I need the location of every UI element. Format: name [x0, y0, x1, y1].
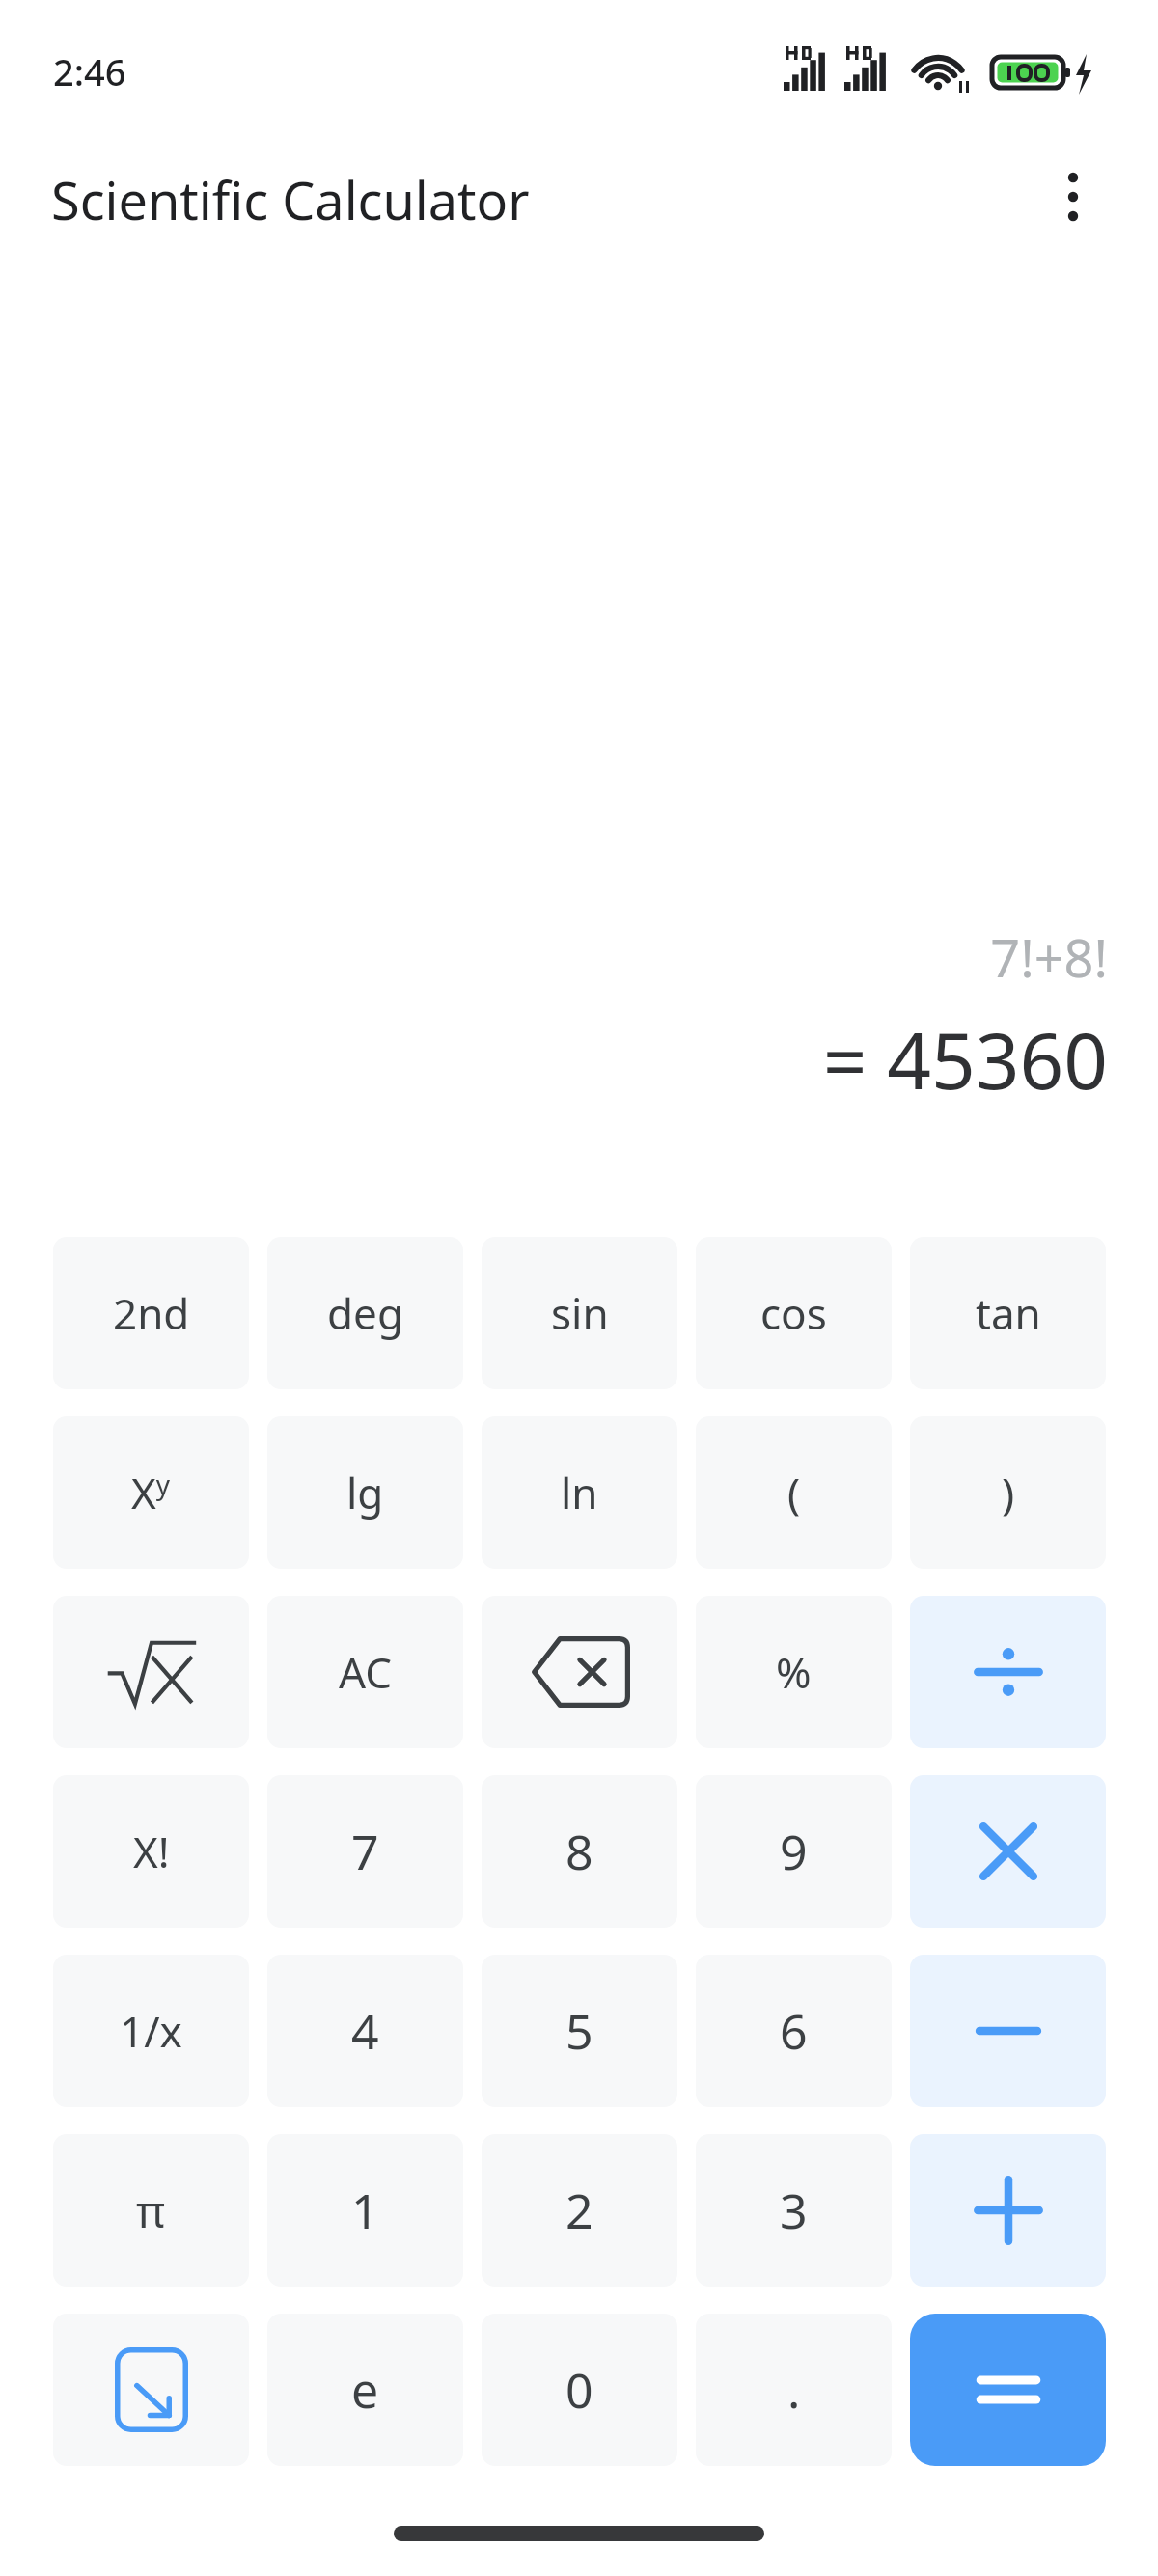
staticText: %	[776, 1643, 812, 1701]
staticText: AC	[339, 1643, 393, 1701]
button[interactable]: (	[696, 1416, 892, 1569]
button[interactable]: π	[53, 2134, 249, 2287]
staticText: 2:46	[53, 46, 126, 96]
button[interactable]: 2	[482, 2134, 677, 2287]
staticText: ln	[561, 1464, 598, 1521]
staticText: 1	[351, 2178, 379, 2243]
button[interactable]: ln	[482, 1416, 677, 1569]
button[interactable]: 6	[696, 1955, 892, 2107]
button[interactable]: 3	[696, 2134, 892, 2287]
button[interactable]: 1	[267, 2134, 463, 2287]
button[interactable]: 5	[482, 1955, 677, 2107]
staticText: deg	[327, 1284, 403, 1342]
staticText: sin	[551, 1284, 609, 1342]
button[interactable]: deg	[267, 1237, 463, 1389]
button[interactable]: 4	[267, 1955, 463, 2107]
staticText: 7!+8!	[0, 921, 1108, 993]
button[interactable]: More options	[1031, 154, 1116, 239]
button[interactable]: 9	[696, 1775, 892, 1928]
button[interactable]: 1/x	[53, 1955, 249, 2107]
button[interactable]: )	[910, 1416, 1106, 1569]
button[interactable]: AC	[267, 1596, 463, 1748]
button[interactable]: sin	[482, 1237, 677, 1389]
staticText: 2nd	[113, 1284, 190, 1342]
staticText: Xy	[131, 1464, 171, 1521]
staticText: π	[136, 2180, 166, 2241]
button[interactable]: tan	[910, 1237, 1106, 1389]
staticText: 6	[780, 1998, 808, 2064]
staticText: e	[351, 2357, 379, 2423]
button[interactable]: 7	[267, 1775, 463, 1928]
button[interactable]: Backspace	[482, 1596, 677, 1748]
button[interactable]: Plus	[910, 2134, 1106, 2287]
button[interactable]: Xy	[53, 1416, 249, 1569]
button[interactable]: .	[696, 2314, 892, 2466]
button[interactable]: cos	[696, 1237, 892, 1389]
staticText: 2	[565, 2178, 593, 2243]
button[interactable]: 0	[482, 2314, 677, 2466]
staticText: Scientific Calculator	[51, 164, 530, 235]
staticText: tan	[976, 1284, 1041, 1342]
staticText: )	[1002, 1464, 1015, 1521]
staticText: 7	[351, 1819, 379, 1884]
button[interactable]: 8	[482, 1775, 677, 1928]
button[interactable]: Minus	[910, 1955, 1106, 2107]
button[interactable]: X!	[53, 1775, 249, 1928]
staticText: cos	[760, 1284, 827, 1342]
staticText: = 45360	[0, 1006, 1108, 1111]
button[interactable]: Square root	[53, 1596, 249, 1748]
staticText: 4	[351, 1998, 379, 2064]
button[interactable]: lg	[267, 1416, 463, 1569]
button[interactable]: Equals	[910, 2314, 1106, 2466]
button[interactable]: 2nd	[53, 1237, 249, 1389]
staticText: .	[787, 2357, 801, 2423]
button[interactable]: Multiply	[910, 1775, 1106, 1928]
staticText: 1/x	[120, 2002, 182, 2060]
staticText: 9	[780, 1819, 808, 1884]
button[interactable]: %	[696, 1596, 892, 1748]
staticText: (	[787, 1464, 801, 1521]
staticText: 0	[565, 2357, 593, 2423]
button[interactable]: e	[267, 2314, 463, 2466]
staticText: 3	[780, 2178, 808, 2243]
button[interactable]: Divide	[910, 1596, 1106, 1748]
button[interactable]: Collapse keypad	[53, 2314, 249, 2466]
staticText: lg	[346, 1464, 384, 1521]
staticText: X!	[133, 1822, 170, 1880]
staticText: 5	[565, 1998, 593, 2064]
staticText: 8	[565, 1819, 593, 1884]
